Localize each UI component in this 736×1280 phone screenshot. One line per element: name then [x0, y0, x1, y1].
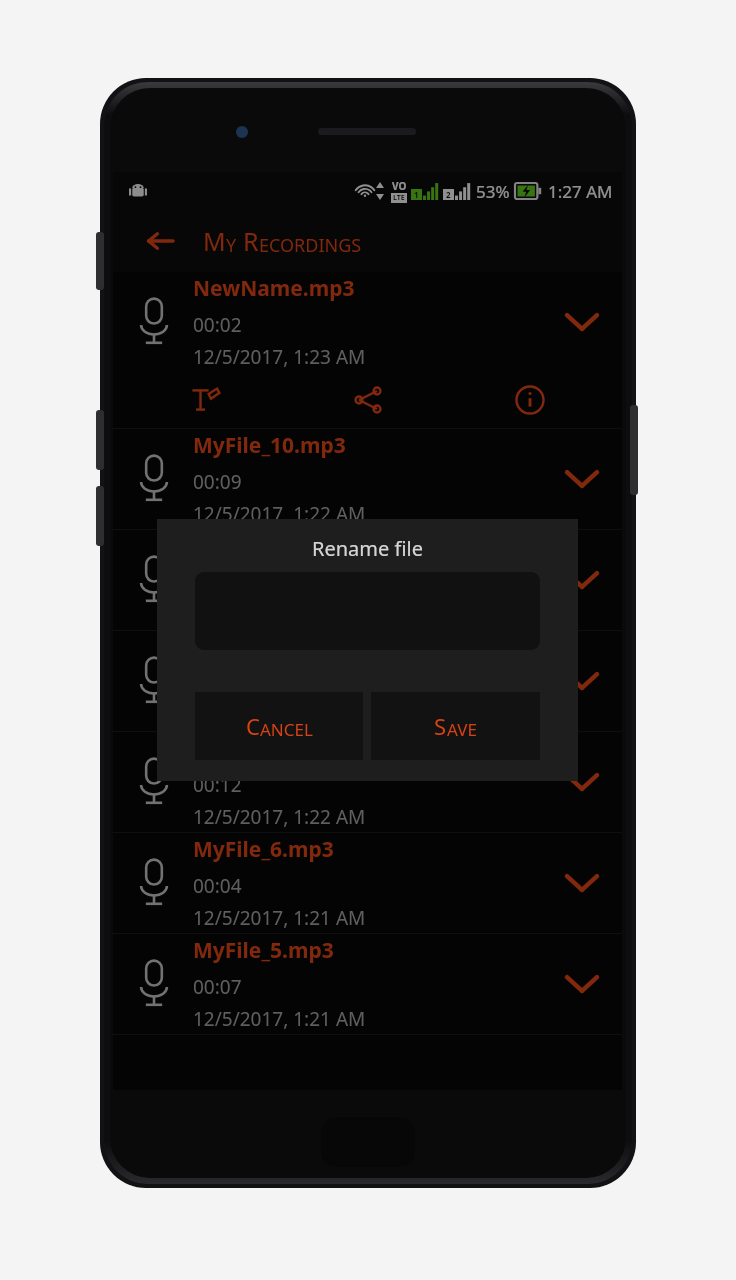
staticText: 00:06: [193, 570, 242, 596]
staticText: 12/5/2017, 1:23 AM: [193, 344, 366, 370]
staticText: R: [243, 224, 259, 258]
button[interactable]: Expand: [562, 560, 602, 600]
staticText: 12/5/2017, 1:22 AM: [193, 804, 366, 830]
staticText: 00:02: [193, 312, 242, 338]
staticText: MyFile_5.mp3: [193, 936, 334, 965]
staticText: S: [434, 711, 447, 741]
staticText: 12/5/2017, 1:22 AM: [193, 501, 366, 527]
button[interactable]: MyFile_5.mp3: [113, 934, 622, 1035]
staticText: 00:05: [193, 671, 242, 697]
button[interactable]: MyFile_7.mp3: [113, 732, 622, 833]
staticText: Rename file: [157, 535, 578, 562]
staticText: 00:04: [193, 873, 242, 899]
staticText: LTE: [393, 193, 405, 203]
button[interactable]: Back: [141, 222, 179, 260]
staticText: MyFile_8.mp3: [193, 633, 334, 662]
button[interactable]: MyFile_9.mp3: [113, 530, 622, 631]
button[interactable]: Share: [298, 372, 438, 428]
button[interactable]: C: [195, 692, 363, 760]
staticText: 12/5/2017, 1:22 AM: [193, 703, 366, 729]
staticText: VO: [392, 179, 407, 193]
button[interactable]: MyFile_6.mp3: [113, 833, 622, 934]
staticText: NewName.mp3: [193, 274, 355, 303]
staticText: 00:09: [193, 469, 242, 495]
staticText: 00:07: [193, 974, 242, 1000]
button[interactable]: MyFile_10.mp3: [113, 429, 622, 530]
button[interactable]: Expand: [562, 863, 602, 903]
staticText: 12/5/2017, 1:21 AM: [193, 1006, 366, 1032]
button[interactable]: MyFile_8.mp3: [113, 631, 622, 732]
staticText: 1: [414, 189, 419, 200]
staticText: Y: [226, 233, 237, 258]
button[interactable]: S: [371, 692, 540, 760]
staticText: AVE: [447, 718, 477, 741]
staticText: C: [246, 711, 260, 741]
button[interactable]: Info: [460, 372, 600, 428]
button[interactable]: Expand: [562, 661, 602, 701]
button[interactable]: NewName.mp3: [113, 272, 622, 429]
staticText: MyFile_6.mp3: [193, 835, 334, 864]
staticText: MyFile_7.mp3: [193, 734, 334, 763]
staticText: 53%: [476, 180, 510, 203]
staticText: M: [203, 224, 226, 258]
staticText: 12/5/2017, 1:21 AM: [193, 905, 366, 931]
staticText: 2: [446, 189, 451, 200]
button[interactable]: Expand: [562, 459, 602, 499]
button[interactable]: Expand: [562, 964, 602, 1004]
staticText: MyFile_10.mp3: [193, 431, 346, 460]
button[interactable]: Rename: [135, 372, 275, 428]
staticText: ECORDINGS: [259, 233, 362, 258]
button[interactable]: Expand: [562, 762, 602, 802]
button[interactable]: Expand: [562, 302, 602, 342]
staticText: ANCEL: [260, 718, 313, 741]
staticText: 1:27 AM: [548, 180, 613, 203]
staticText: 00:12: [193, 772, 242, 798]
staticText: MyFile_9.mp3: [193, 532, 334, 561]
